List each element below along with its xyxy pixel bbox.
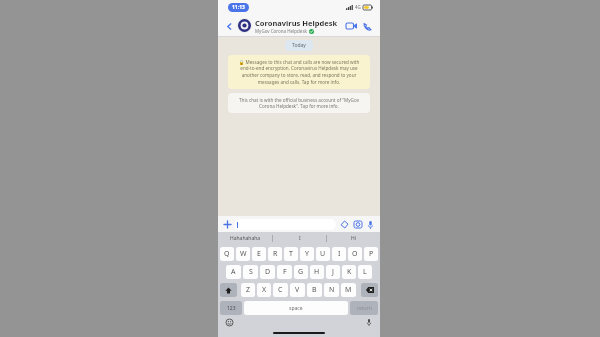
button[interactable]: Camera [352, 219, 363, 230]
button[interactable]: F [277, 265, 292, 279]
button[interactable]: G [294, 265, 308, 279]
button[interactable]: 123 [220, 301, 242, 315]
staticText: T [289, 249, 293, 259]
button[interactable]: R [268, 247, 282, 261]
staticText: Q [224, 249, 230, 259]
button[interactable]: H [310, 265, 324, 279]
staticText: This chat is with the official business … [234, 97, 364, 109]
staticText: F [283, 267, 287, 277]
staticText: R [273, 249, 278, 259]
button[interactable]: Backspace [361, 283, 378, 297]
button[interactable]: V [290, 283, 305, 297]
staticText: Y [305, 249, 309, 259]
staticText: L [363, 267, 367, 277]
staticText: A [231, 267, 236, 277]
button[interactable]: C [273, 283, 288, 297]
button[interactable]: O [348, 247, 362, 261]
staticText: J [332, 267, 334, 277]
button[interactable]: Voice call [359, 18, 375, 34]
staticText: Hi [351, 235, 356, 242]
button[interactable]: Sticker [339, 219, 350, 230]
staticText: 123 [227, 305, 236, 312]
button[interactable]: J [326, 265, 340, 279]
button[interactable]: M [341, 283, 356, 297]
staticText: X [262, 285, 267, 295]
staticText: O [352, 249, 358, 259]
button[interactable]: Hi [327, 232, 380, 245]
staticText: D [265, 267, 271, 277]
button[interactable]: Hahahahaha [218, 232, 272, 245]
button[interactable]: space [244, 301, 348, 315]
button[interactable]: B [307, 283, 322, 297]
staticText: return [357, 305, 372, 312]
staticText: K [347, 267, 352, 277]
staticText: G [298, 267, 304, 277]
staticText: I [338, 249, 341, 259]
button[interactable]: Shift [220, 283, 237, 297]
staticText: Hahahahaha [230, 235, 261, 242]
staticText: S [249, 267, 253, 277]
staticText: M [345, 285, 352, 295]
button[interactable]: U [316, 247, 330, 261]
button[interactable]: Dictation [364, 317, 374, 327]
staticText: C [278, 285, 283, 295]
staticText: Z [246, 285, 251, 295]
button[interactable]: Voice message [365, 219, 376, 230]
staticText: 4G [355, 4, 361, 10]
staticText: H [314, 267, 320, 277]
staticText: V [295, 285, 300, 295]
staticText: W [240, 249, 247, 259]
button[interactable]: Attach [222, 219, 233, 230]
staticText: B [312, 285, 317, 295]
button[interactable]: S [243, 265, 258, 279]
button[interactable]: I [273, 232, 326, 245]
staticText: N [329, 285, 335, 295]
button[interactable] [234, 219, 336, 230]
button[interactable]: E [252, 247, 266, 261]
button[interactable]: Y [300, 247, 314, 261]
button[interactable]: N [324, 283, 339, 297]
button[interactable]: Back [223, 20, 235, 32]
staticText: 🔒 Messages to this chat and calls are no… [234, 59, 364, 85]
button[interactable]: Q [220, 247, 234, 261]
button[interactable]: return [350, 301, 378, 315]
staticText: U [320, 249, 326, 259]
button[interactable]: A [226, 265, 241, 279]
button[interactable]: T [284, 247, 298, 261]
staticText: E [257, 249, 261, 259]
button[interactable]: X [257, 283, 271, 297]
button[interactable]: Z [241, 283, 255, 297]
staticText: Today [292, 42, 306, 49]
staticText: space [289, 305, 303, 312]
button[interactable]: Coronavirus Helpdesk [255, 18, 343, 34]
button[interactable]: K [342, 265, 356, 279]
button[interactable]: W [236, 247, 250, 261]
staticText: Coronavirus Helpdesk [255, 18, 338, 28]
staticText: MyGov Corona Helpdesk [255, 28, 307, 34]
button[interactable]: Emoji [224, 317, 234, 327]
staticText: I [299, 235, 301, 242]
staticText: 11:13 [232, 4, 245, 11]
button[interactable]: P [364, 247, 378, 261]
button[interactable]: D [260, 265, 275, 279]
button[interactable]: Video call [343, 18, 359, 34]
button[interactable]: I [332, 247, 346, 261]
staticText: P [369, 249, 374, 259]
button[interactable]: L [358, 265, 372, 279]
